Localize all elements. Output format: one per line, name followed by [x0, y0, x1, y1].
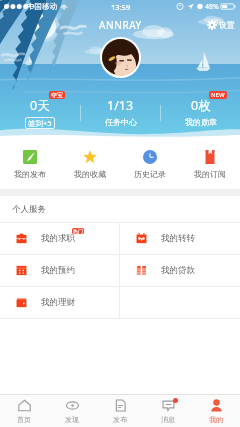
staticText: 我的预约 — [41, 265, 75, 276]
staticText: 1/13 — [107, 97, 134, 114]
staticText: 我的订阅 — [194, 169, 226, 179]
button[interactable]: 我的发布 — [0, 140, 60, 189]
button[interactable]: 我的 — [192, 395, 240, 427]
button[interactable]: 消息 — [144, 395, 192, 427]
button[interactable]: 我的收藏 — [60, 140, 120, 189]
button[interactable]: 我的转转 — [120, 223, 240, 254]
button[interactable]: Profile photo — [102, 39, 139, 76]
button[interactable]: 0枚 — [161, 85, 240, 134]
staticText: 消息 — [161, 415, 175, 424]
button[interactable]: 我的理财 — [0, 287, 119, 318]
staticText: 0枚 — [191, 97, 211, 114]
staticText: 设置 — [219, 20, 235, 30]
button[interactable]: 我的预约 — [0, 255, 119, 286]
staticText: 我的发布 — [14, 169, 46, 179]
staticText: 我的理财 — [41, 297, 75, 308]
staticText: 首页 — [17, 415, 31, 424]
button[interactable]: 我的求职 — [0, 223, 119, 254]
staticText: 48% — [205, 2, 219, 12]
staticText: 发现 — [65, 415, 79, 424]
staticText: NEW — [211, 91, 225, 99]
staticText: 签到+5 — [28, 118, 52, 128]
staticText: 热门 — [73, 228, 83, 234]
staticText: ANNRAY — [99, 18, 142, 32]
button[interactable]: 首页 — [0, 395, 48, 427]
button[interactable]: 我的贷款 — [120, 255, 240, 286]
staticText: 我的收藏 — [74, 169, 106, 179]
button[interactable]: 0天 — [0, 85, 80, 134]
button[interactable]: 设置 — [202, 19, 240, 31]
staticText: 历史记录 — [134, 169, 166, 179]
staticText: 0天 — [30, 97, 50, 114]
button[interactable]: 我的订阅 — [180, 140, 240, 189]
staticText: 中国移动 — [27, 2, 57, 11]
staticText: 我的转转 — [161, 233, 195, 244]
staticText: 我的 — [209, 415, 223, 424]
staticText: 我的贷款 — [161, 265, 195, 276]
button[interactable]: 1/13 — [81, 85, 160, 134]
staticText: 个人服务 — [12, 204, 46, 215]
staticText: 13:59 — [111, 2, 131, 12]
staticText: 发布 — [113, 415, 127, 424]
staticText: 任务中心 — [105, 117, 137, 127]
staticText: 夺宝 — [51, 91, 63, 99]
staticText: 我的勋章 — [185, 117, 217, 127]
button[interactable]: 历史记录 — [120, 140, 180, 189]
button[interactable]: 发布 — [96, 395, 144, 427]
staticText: 我的求职 — [41, 233, 75, 244]
button[interactable]: 发现 — [48, 395, 96, 427]
